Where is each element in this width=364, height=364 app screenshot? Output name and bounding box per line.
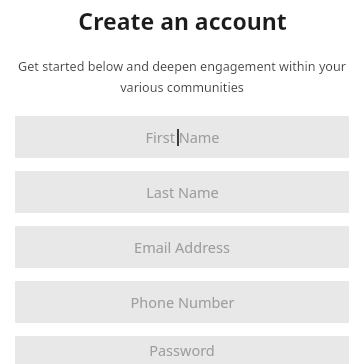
staticText: Email Address bbox=[134, 237, 230, 257]
staticText: First Name bbox=[145, 127, 220, 147]
staticText: Create an account bbox=[78, 5, 287, 36]
button[interactable]: Last Name bbox=[15, 171, 349, 213]
button[interactable]: Phone Number bbox=[15, 281, 349, 323]
staticText: Phone Number bbox=[130, 292, 235, 312]
button[interactable]: Password bbox=[15, 336, 349, 364]
staticText: Password bbox=[149, 340, 215, 360]
staticText: Get started below and deepen engagement … bbox=[13, 58, 351, 95]
button[interactable]: First Name bbox=[15, 116, 349, 158]
button[interactable]: Email Address bbox=[15, 226, 349, 268]
staticText: Last Name bbox=[146, 182, 219, 202]
